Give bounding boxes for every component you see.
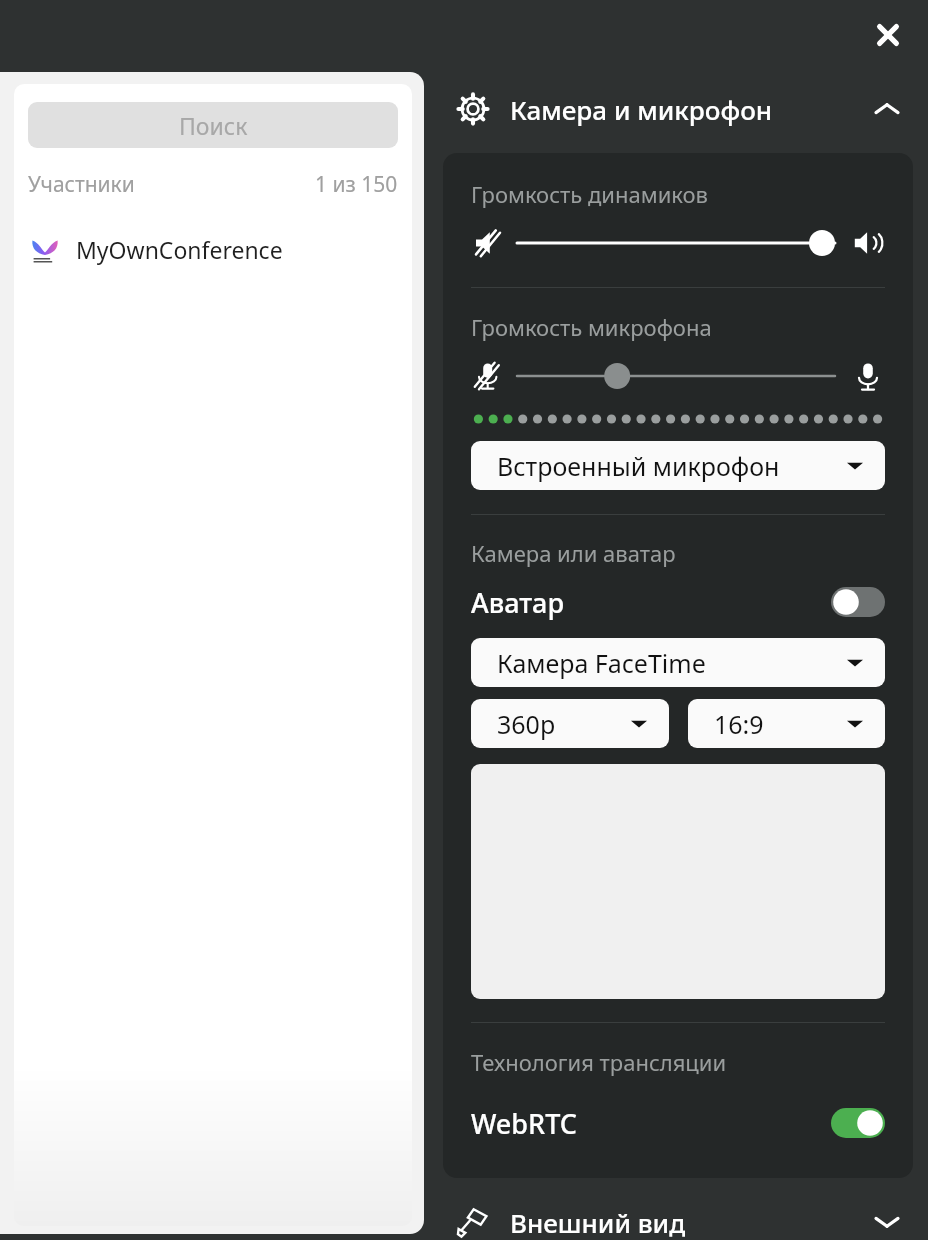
staticText: Камера FaceTime <box>497 646 706 680</box>
button[interactable]: Поиск <box>28 102 398 148</box>
staticText: Внешний вид <box>510 1205 686 1240</box>
staticText: Встроенный микрофон <box>497 449 780 483</box>
staticText: Участники <box>28 170 135 199</box>
button[interactable]: Close <box>862 9 914 61</box>
staticText: 360p <box>497 707 556 741</box>
button[interactable]: Microphone <box>851 359 885 393</box>
staticText: Аватар <box>471 584 565 621</box>
staticText: WebRTC <box>471 1105 577 1142</box>
button[interactable]: Mute speaker <box>471 226 505 260</box>
staticText: 16:9 <box>714 707 764 741</box>
button[interactable]: Аватар <box>471 580 885 624</box>
button[interactable]: Mute microphone <box>471 359 505 393</box>
staticText: Камера или аватар <box>471 538 676 568</box>
staticText: 1 из 150 <box>315 170 398 199</box>
staticText: MyOwnConference <box>76 234 283 265</box>
button[interactable]: Камера FaceTime <box>471 638 885 687</box>
staticText: Громкость микрофона <box>471 312 712 342</box>
button[interactable]: Встроенный микрофон <box>471 441 885 490</box>
staticText: Камера и микрофон <box>510 92 773 127</box>
staticText: Громкость динамиков <box>471 179 709 209</box>
button[interactable]: Камера и микрофон <box>440 80 928 138</box>
button[interactable] <box>517 226 835 260</box>
button[interactable]: MyOwnConference <box>14 227 412 271</box>
button[interactable]: WebRTC <box>471 1101 885 1145</box>
button[interactable] <box>517 359 835 393</box>
button[interactable]: 360p <box>471 699 669 748</box>
button[interactable]: Speaker <box>851 226 885 260</box>
button[interactable]: 16:9 <box>688 699 885 748</box>
staticText: Поиск <box>179 110 248 141</box>
staticText: Технология трансляции <box>471 1047 727 1077</box>
button[interactable]: Внешний вид <box>440 1204 928 1240</box>
